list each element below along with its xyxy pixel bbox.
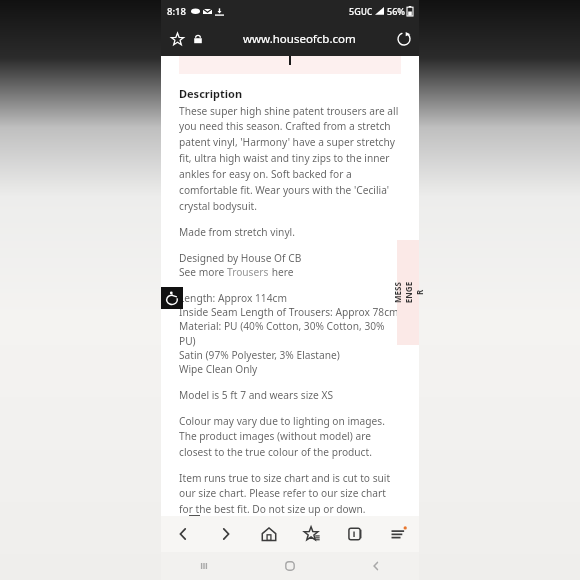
staticText: here [269, 265, 294, 279]
button[interactable]: Menu [376, 516, 419, 552]
button[interactable]: Back [161, 516, 204, 552]
staticText: 56% [387, 5, 405, 17]
staticText: MESSENGER [391, 281, 424, 303]
staticText: 5G [349, 5, 361, 17]
staticText: See more [179, 265, 227, 279]
button[interactable]: Home [247, 516, 290, 552]
staticText: Trousers [227, 265, 269, 279]
staticText: Item runs true to size chart and is cut … [179, 471, 399, 516]
button[interactable]: Recents [161, 552, 247, 580]
staticText: Made from stretch vinyl. [179, 225, 399, 239]
staticText: Length: Approx 114cm [179, 291, 399, 305]
button[interactable]: Site security [187, 28, 209, 50]
button[interactable]: Bookmark [161, 26, 187, 52]
staticText: Wipe Clean Only [179, 362, 399, 376]
staticText: These super high shine patent trousers a… [179, 104, 399, 213]
button[interactable]: Reload [389, 24, 419, 54]
button[interactable]: Messenger [397, 240, 419, 345]
button[interactable]: Back [333, 552, 419, 580]
staticText: Colour may vary due to lighting on image… [179, 414, 399, 459]
staticText: Designed by House Of CB [179, 251, 399, 265]
button[interactable]: See more [179, 265, 294, 279]
staticText: Description [179, 86, 243, 101]
staticText: Inside Seam Length of Trousers: Approx 7… [179, 305, 399, 319]
button[interactable]: Forward [204, 516, 247, 552]
staticText: Material: PU (40% Cotton, 30% Cotton, 30… [179, 319, 399, 348]
staticText: Model is 5 ft 7 and wears size XS [179, 388, 399, 402]
staticText: UC [361, 6, 372, 17]
staticText: www.houseofcb.com [243, 31, 356, 47]
button[interactable]: Home [247, 552, 333, 580]
staticText: 8:18 [167, 5, 186, 18]
button[interactable]: Bookmarks [290, 516, 333, 552]
button[interactable]: Accessibility options [161, 287, 183, 309]
button[interactable]: Tabs [333, 516, 376, 552]
staticText: Satin (97% Polyester, 3% Elastane) [179, 348, 399, 362]
